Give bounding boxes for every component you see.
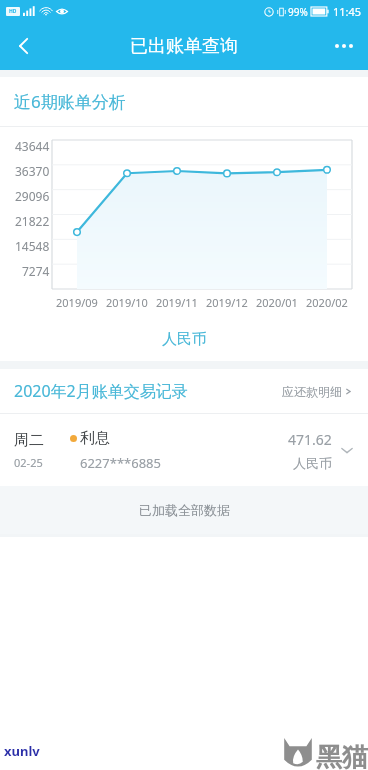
staticText: 人民币 xyxy=(162,330,207,349)
staticText: 2019/10 xyxy=(106,295,148,310)
button[interactable]: 周二 xyxy=(0,414,368,486)
button[interactable]: 应还款明细 xyxy=(280,378,354,405)
staticText: 已加载全部数据 xyxy=(139,502,230,518)
staticText: 2020/01 xyxy=(256,295,298,310)
staticText: 02-25 xyxy=(14,455,43,470)
staticText: 471.62 xyxy=(288,430,332,449)
staticText: 2020/02 xyxy=(306,295,348,310)
staticText: 利息 xyxy=(80,429,110,448)
staticText: 近6期账单分析 xyxy=(14,90,126,113)
staticText: 已出账单查询 xyxy=(130,35,238,58)
staticText: 黑猫 xyxy=(316,741,368,770)
staticText: HD xyxy=(9,8,17,15)
staticText: 周二 xyxy=(14,431,44,450)
staticText: 2020年2月账单交易记录 xyxy=(14,380,188,402)
staticText: 2019/12 xyxy=(206,295,248,310)
staticText: 21822 xyxy=(15,213,50,229)
staticText: 43644 xyxy=(15,138,50,154)
button[interactable]: More options xyxy=(320,22,368,70)
staticText: 应还款明细 xyxy=(282,384,342,399)
button[interactable]: Expand xyxy=(338,441,356,459)
staticText: 7274 xyxy=(22,263,50,279)
staticText: 29096 xyxy=(15,188,50,204)
staticText: 14548 xyxy=(15,238,50,254)
staticText: 36370 xyxy=(15,163,50,179)
staticText: 2019/09 xyxy=(56,295,98,310)
staticText: 11:45 xyxy=(333,4,362,19)
staticText: 99% xyxy=(288,5,308,19)
staticText: 人民币 xyxy=(293,455,332,471)
button[interactable]: Back xyxy=(0,22,48,70)
staticText: xunlv xyxy=(4,742,40,760)
staticText: 2019/11 xyxy=(156,295,198,310)
staticText: 6227***6885 xyxy=(80,454,161,472)
